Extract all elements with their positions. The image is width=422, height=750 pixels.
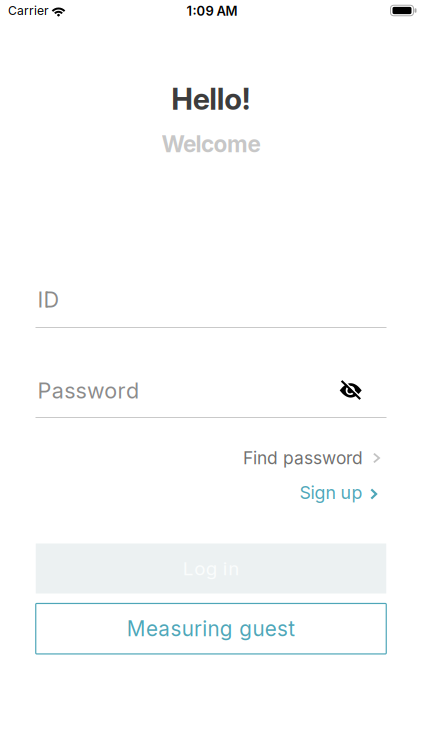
button[interactable]: Find password: [243, 447, 380, 468]
button[interactable]: Sign up: [299, 482, 377, 503]
staticText: Carrier: [8, 3, 49, 18]
staticText: Hello!: [171, 81, 251, 117]
button[interactable]: Show password: [336, 377, 364, 403]
staticText: Password: [37, 377, 139, 404]
button[interactable]: ID: [35, 289, 386, 328]
button[interactable]: Measuring guest: [36, 603, 386, 654]
staticText: Welcome: [161, 130, 260, 158]
staticText: Find password: [243, 447, 363, 468]
button[interactable]: Password: [35, 379, 386, 418]
staticText: Sign up: [299, 482, 362, 503]
staticText: ID: [37, 286, 59, 313]
staticText: 1:09 AM: [186, 3, 237, 19]
staticText: Measuring guest: [127, 616, 295, 641]
staticText: Log in: [183, 557, 239, 580]
